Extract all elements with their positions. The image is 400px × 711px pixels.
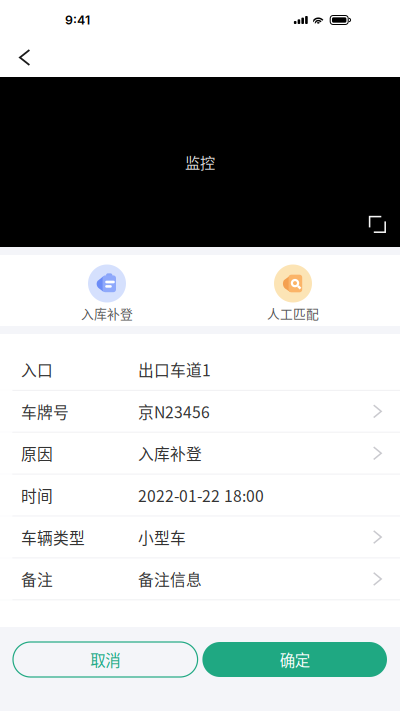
staticText: 车辆类型	[21, 526, 85, 548]
button[interactable]: 入口	[0, 349, 400, 390]
button[interactable]: 车辆类型	[0, 517, 400, 557]
staticText: 原因	[21, 442, 53, 465]
button[interactable]: 备注	[0, 558, 400, 599]
staticText: 9:41	[65, 12, 90, 27]
button[interactable]: 车牌号	[0, 391, 400, 432]
staticText: 时间	[21, 484, 53, 507]
button[interactable]: 取消	[13, 642, 198, 677]
button[interactable]: Fullscreen	[369, 216, 386, 233]
staticText: 入库补登	[138, 442, 202, 465]
button[interactable]: 时间	[0, 475, 400, 516]
staticText: 京N23456	[138, 400, 210, 423]
staticText: 车牌号	[21, 400, 69, 423]
button[interactable]: 确定	[202, 642, 387, 677]
staticText: 人工匹配	[267, 304, 319, 322]
staticText: 出口车道1	[138, 358, 211, 381]
staticText: 备注	[21, 568, 53, 590]
staticText: 确定	[280, 648, 310, 671]
button[interactable]: Back	[0, 41, 46, 76]
staticText: 2022-01-22 18:00	[138, 484, 264, 507]
staticText: 取消	[90, 648, 120, 671]
button[interactable]: 原因	[0, 433, 400, 474]
button[interactable]: 人工匹配	[200, 264, 386, 322]
staticText: 入库补登	[81, 304, 133, 322]
staticText: 备注信息	[138, 568, 202, 590]
staticText: 小型车	[138, 526, 186, 548]
staticText: 监控	[185, 151, 215, 173]
staticText: 入口	[21, 358, 53, 381]
button[interactable]: 入库补登	[14, 264, 200, 322]
